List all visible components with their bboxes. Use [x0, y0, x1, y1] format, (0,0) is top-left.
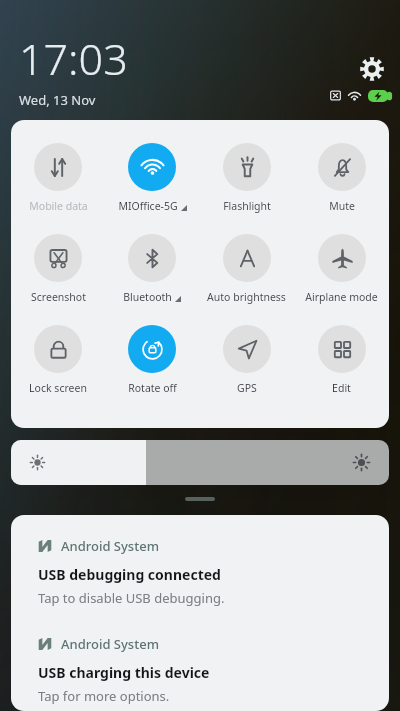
button[interactable]: Lock screen — [11, 325, 105, 395]
staticText: USB charging this device — [38, 663, 210, 682]
staticText: Wed, 13 Nov — [19, 91, 96, 109]
staticText: Android System — [61, 635, 159, 653]
button[interactable]: Brightness — [11, 440, 389, 485]
staticText: Auto brightness — [207, 290, 286, 304]
button[interactable]: MIOffice-5G — [105, 143, 199, 213]
staticText: Tap for more options. — [38, 687, 170, 705]
button[interactable]: Airplane mode — [294, 234, 389, 304]
button[interactable]: GPS — [199, 325, 294, 395]
staticText: 17:03 — [19, 29, 128, 88]
staticText: Bluetooth — [123, 290, 172, 304]
button[interactable]: Android System — [38, 537, 373, 607]
staticText: Lock screen — [29, 381, 87, 395]
button[interactable]: Auto brightness — [199, 234, 294, 304]
button[interactable]: Mute — [294, 143, 389, 213]
staticText: Rotate off — [128, 381, 177, 395]
button[interactable]: Settings — [356, 53, 388, 85]
staticText: GPS — [237, 381, 257, 395]
staticText: MIOffice-5G — [118, 199, 178, 213]
staticText: Airplane mode — [305, 290, 378, 304]
staticText: Mute — [329, 199, 355, 213]
staticText: Mobile data — [29, 199, 88, 213]
button[interactable]: Bluetooth — [105, 234, 199, 304]
staticText: Screenshot — [31, 290, 86, 304]
button[interactable]: Mobile data — [11, 143, 105, 213]
staticText: Edit — [332, 381, 351, 395]
staticText: Tap to disable USB debugging. — [38, 589, 225, 607]
button[interactable]: Edit — [294, 325, 389, 395]
staticText: Android System — [61, 537, 159, 555]
staticText: USB debugging connected — [38, 565, 221, 584]
button[interactable]: Flashlight — [199, 143, 294, 213]
button[interactable]: Rotate off — [105, 325, 199, 395]
button[interactable]: Android System — [38, 635, 373, 705]
button[interactable]: Screenshot — [11, 234, 105, 304]
staticText: Flashlight — [223, 199, 271, 213]
